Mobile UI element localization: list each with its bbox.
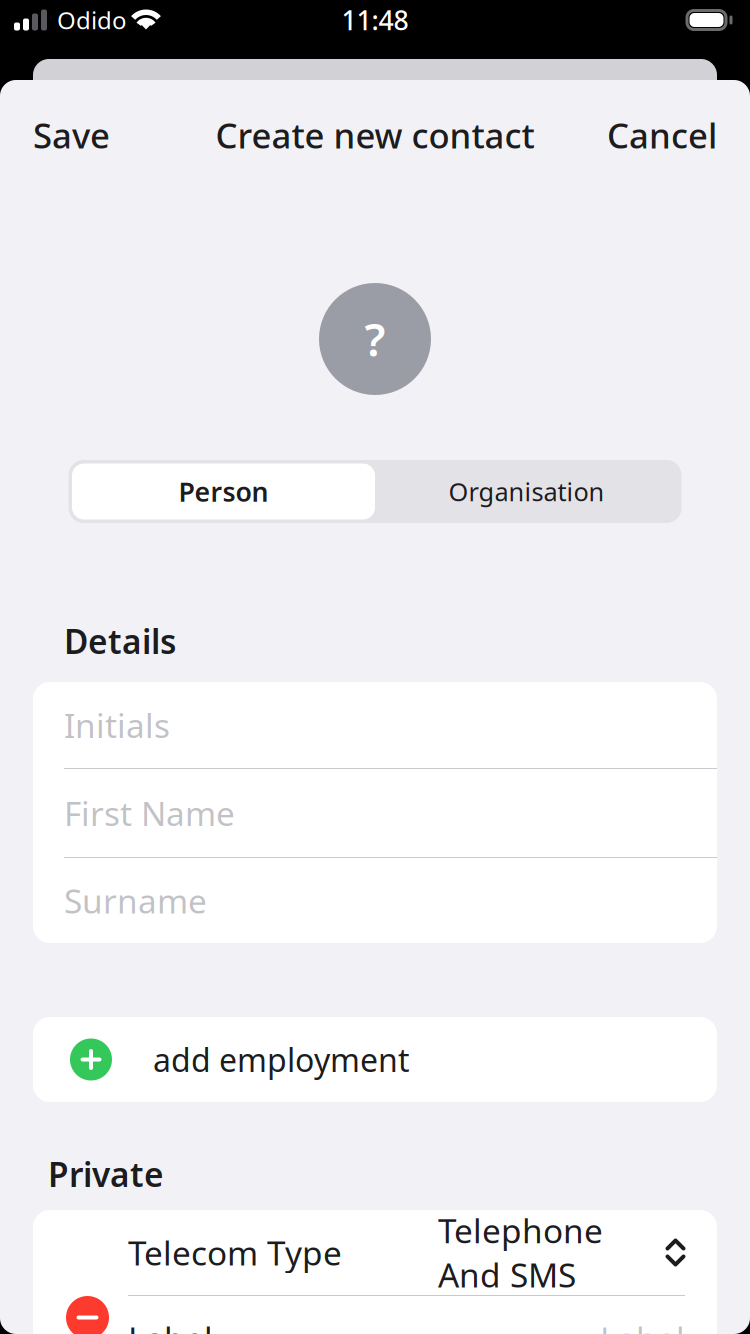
button[interactable]: Remove label	[66, 1296, 109, 1334]
button[interactable]: Cancel	[607, 112, 717, 158]
staticText: Organisation	[448, 475, 604, 508]
staticText: First Name	[64, 791, 235, 835]
button[interactable]: Telecom Type	[33, 1210, 717, 1295]
staticText: Details	[64, 619, 176, 663]
staticText: Private	[48, 1152, 164, 1196]
staticText: Telephone And SMS	[438, 1208, 603, 1297]
staticText: Initials	[64, 703, 170, 747]
staticText: Label	[600, 1316, 685, 1334]
staticText: ?	[364, 309, 385, 369]
staticText: Save	[33, 112, 110, 158]
staticText: add employment	[153, 1038, 410, 1081]
staticText: Odido	[57, 4, 127, 36]
staticText: Telecom Type	[128, 1230, 342, 1275]
staticText: Create new contact	[215, 112, 534, 158]
button[interactable]: Add photo	[319, 283, 431, 395]
button[interactable]: add employment	[33, 1017, 717, 1102]
staticText: Label	[128, 1316, 213, 1334]
button[interactable]: Person	[72, 463, 375, 519]
button[interactable]: Organisation	[375, 463, 678, 519]
staticText: Cancel	[607, 112, 717, 158]
staticText: Surname	[64, 878, 207, 923]
button[interactable]: Save	[33, 112, 110, 158]
staticText: Person	[178, 474, 268, 509]
staticText: 11:48	[341, 2, 408, 38]
